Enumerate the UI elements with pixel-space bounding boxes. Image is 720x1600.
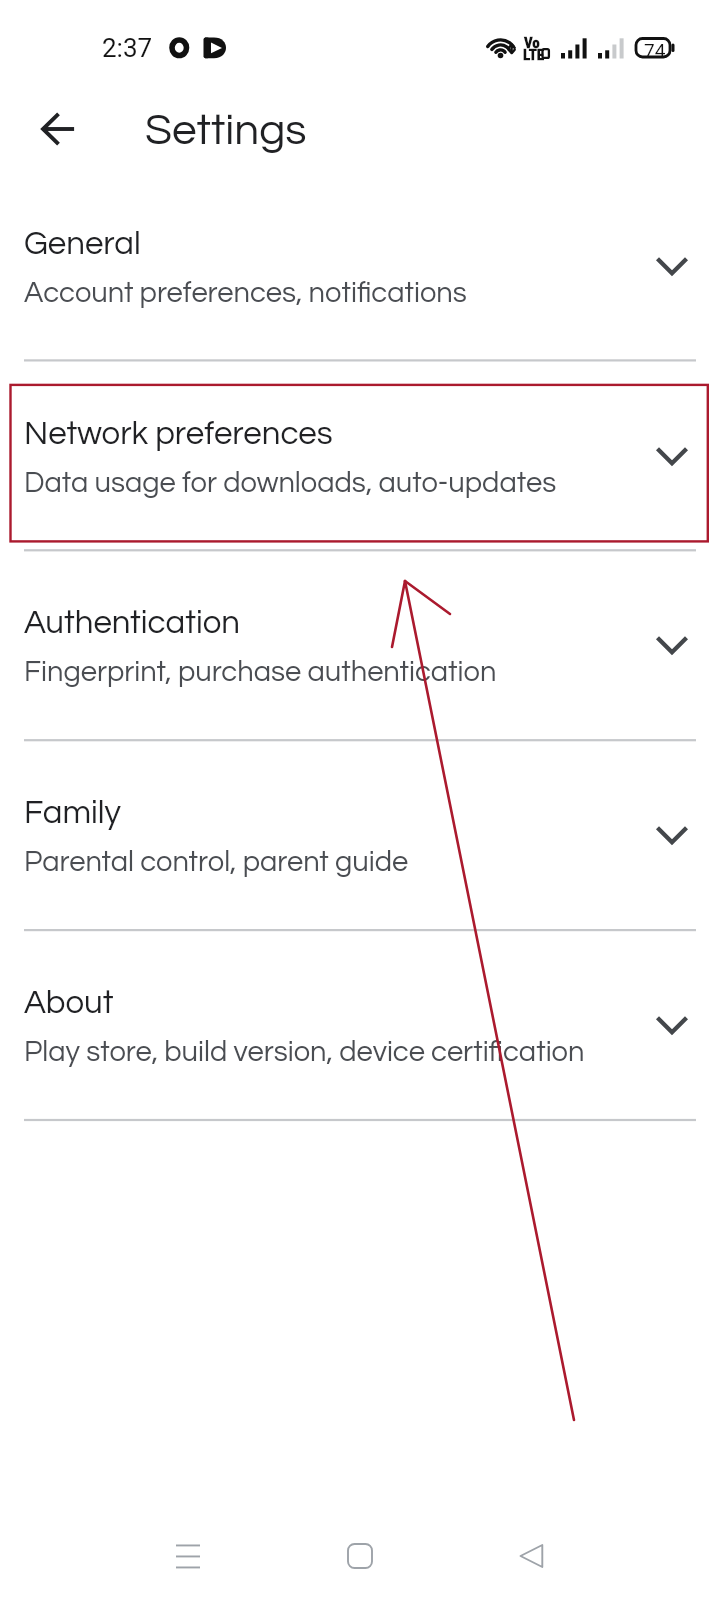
staticText: 74 [644,39,666,61]
staticText: Authentication [24,606,241,640]
staticText: Vo [524,34,540,52]
staticText: Settings [145,108,307,153]
staticText: 2:37 [102,33,153,63]
staticText: Play store, build version, device certif… [24,1037,585,1067]
button[interactable]: Family [0,740,720,929]
staticText: Parental control, parent guide [24,847,409,877]
staticText: General [24,227,141,261]
button[interactable]: General [0,171,720,360]
button[interactable]: Authentication [0,550,720,739]
staticText: Account preferences, notifications [24,278,467,308]
staticText: Data usage for downloads, auto-updates [24,468,557,498]
button[interactable]: About [0,930,720,1119]
staticText: Fingerprint, purchase authentication [24,657,497,687]
staticText: Family [24,796,121,830]
staticText: About [24,986,114,1020]
button[interactable]: Home [330,1526,390,1586]
button[interactable]: Network preferences [0,361,720,550]
button[interactable]: Recent apps [158,1526,218,1586]
staticText: Network preferences [24,417,333,451]
button[interactable]: Back [34,105,82,153]
staticText: LTE [523,46,545,64]
button[interactable]: Back [502,1526,562,1586]
